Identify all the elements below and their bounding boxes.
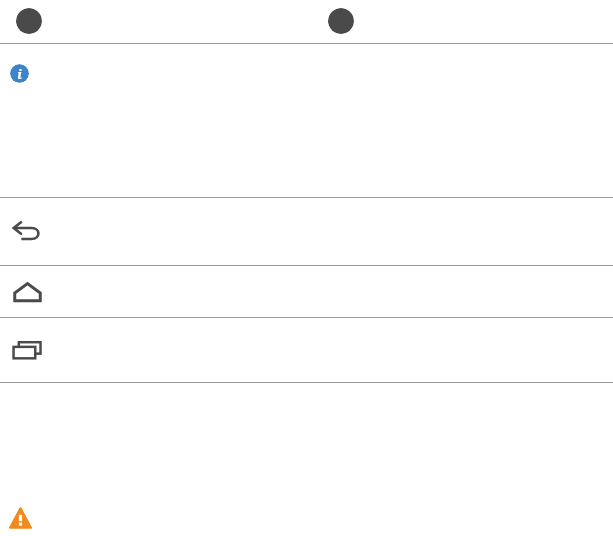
button[interactable]: Home: [0, 266, 613, 317]
button[interactable]: Warning: [9, 507, 32, 530]
staticText: i: [17, 65, 22, 83]
button[interactable]: Information: [10, 64, 29, 83]
button[interactable]: Recent apps: [0, 318, 613, 382]
button[interactable]: Profile: [328, 8, 354, 34]
button[interactable]: Menu: [16, 8, 42, 34]
button[interactable]: Back: [0, 198, 613, 265]
